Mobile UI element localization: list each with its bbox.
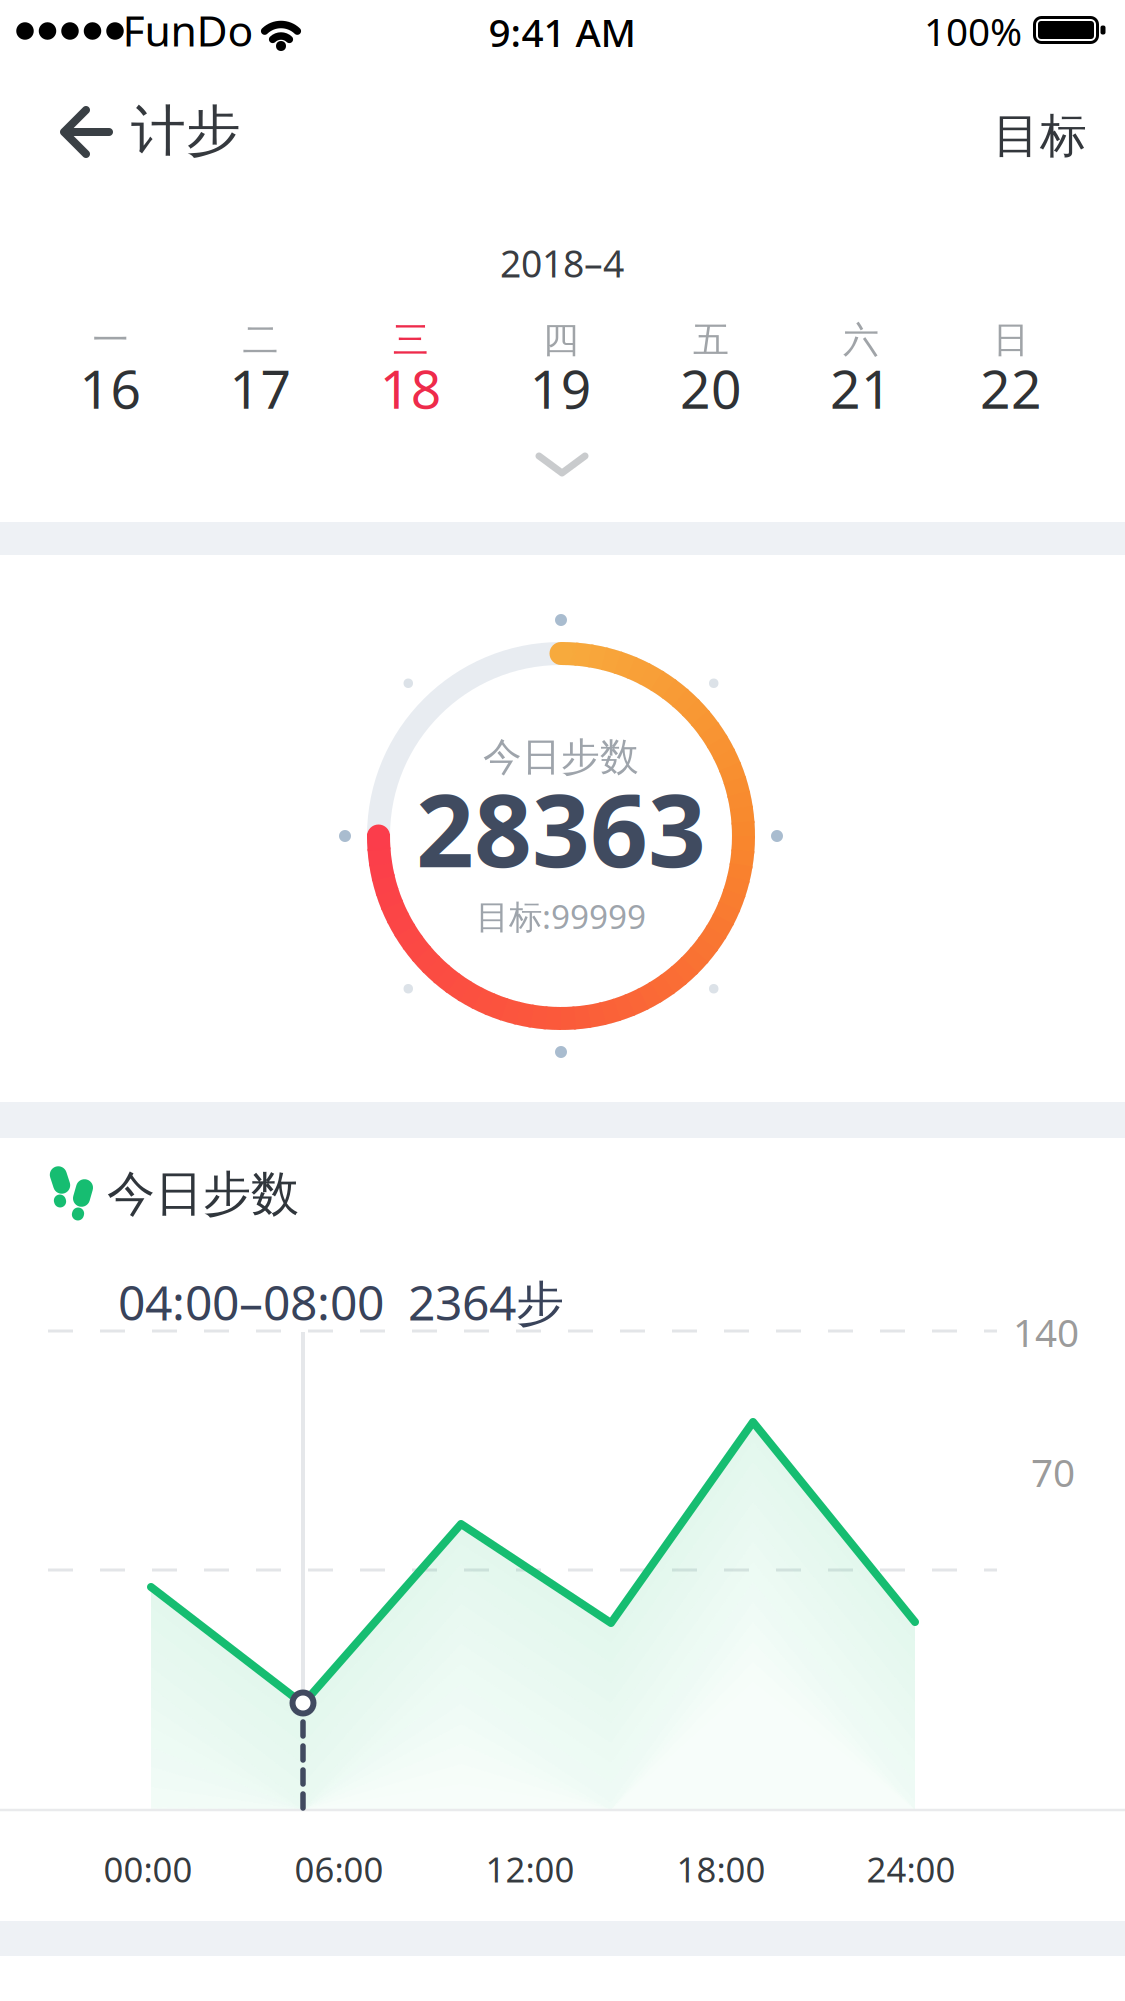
staticText: 18 xyxy=(380,353,442,423)
staticText: 2018–4 xyxy=(500,238,624,288)
staticText: 目标 xyxy=(993,107,1087,165)
staticText: 五 xyxy=(693,318,729,362)
staticText: 06:00 xyxy=(294,1846,383,1892)
staticText: 04:00–08:00 2364步 xyxy=(118,1270,564,1334)
staticText: 17 xyxy=(230,353,292,423)
staticText: 21 xyxy=(830,353,892,423)
button[interactable]: 目标 xyxy=(960,86,1120,186)
button[interactable]: 二 xyxy=(191,304,331,404)
staticText: 24:00 xyxy=(866,1846,955,1892)
staticText: 22 xyxy=(980,353,1042,423)
staticText: 19 xyxy=(530,353,592,423)
staticText: 今日步数 xyxy=(483,733,639,781)
staticText: 28363 xyxy=(416,761,706,895)
button[interactable]: 五 xyxy=(641,304,781,404)
staticText: 二 xyxy=(243,318,279,362)
staticText: 日 xyxy=(993,318,1029,362)
staticText: 140 xyxy=(1013,1306,1079,1358)
staticText: 16 xyxy=(79,353,141,423)
button[interactable] xyxy=(35,77,135,187)
staticText: 计步 xyxy=(131,97,241,164)
staticText: 100% xyxy=(924,5,1022,57)
staticText: 12:00 xyxy=(485,1846,574,1892)
staticText: 三 xyxy=(393,318,429,362)
button[interactable] xyxy=(535,452,589,478)
staticText: 四 xyxy=(543,318,579,362)
button[interactable]: 六 xyxy=(791,304,931,404)
staticText: 00:00 xyxy=(103,1846,192,1892)
button[interactable]: 三 xyxy=(341,304,481,404)
button[interactable]: 一 xyxy=(40,304,180,404)
staticText: 六 xyxy=(843,318,879,362)
staticText: FunDo xyxy=(122,2,253,58)
staticText: 70 xyxy=(1031,1446,1075,1498)
button[interactable]: 日 xyxy=(941,304,1081,404)
staticText: 9:41 AM xyxy=(488,6,635,58)
staticText: 20 xyxy=(680,353,742,423)
staticText: 18:00 xyxy=(676,1846,765,1892)
staticText: 一 xyxy=(92,318,128,362)
button[interactable]: 四 xyxy=(491,304,631,404)
staticText: 目标:99999 xyxy=(476,894,646,938)
staticText: 今日步数 xyxy=(107,1164,299,1223)
